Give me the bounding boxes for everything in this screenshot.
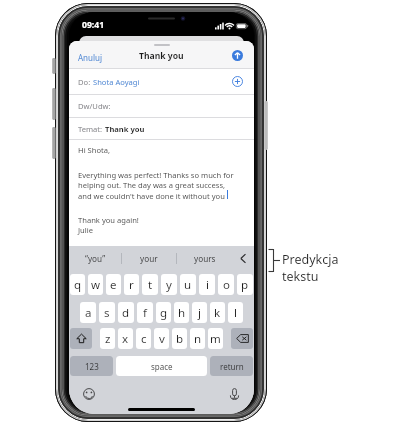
button[interactable]: Send	[232, 50, 243, 61]
staticText: “you”	[85, 253, 106, 264]
button[interactable]: yours	[177, 246, 233, 271]
staticText: Thank you again! Julie	[78, 215, 139, 236]
staticText: k	[214, 305, 221, 321]
staticText: z	[105, 331, 111, 347]
button[interactable]: Shift	[70, 328, 92, 349]
staticText: 123	[85, 361, 99, 372]
button[interactable]: c	[136, 328, 151, 349]
staticText: Dw/Udw:	[78, 101, 111, 111]
button[interactable]: j	[192, 302, 207, 323]
button[interactable]: g	[156, 302, 171, 323]
button[interactable]: Emoji keyboard	[83, 388, 95, 400]
staticText: return	[220, 361, 244, 372]
button[interactable]: Do:	[69, 69, 254, 94]
staticText: n	[194, 331, 202, 347]
button[interactable]: Dw/Udw:	[78, 101, 254, 111]
staticText: r	[129, 277, 134, 293]
button[interactable]: b	[172, 328, 187, 349]
staticText: m	[210, 331, 221, 347]
staticText: p	[241, 277, 249, 293]
button[interactable]: Dictation	[229, 388, 240, 399]
staticText: Thank you	[139, 50, 184, 62]
staticText: e	[110, 277, 117, 293]
staticText: s	[104, 305, 110, 321]
button[interactable]: t	[142, 274, 158, 295]
staticText: Hi Shota,	[78, 145, 111, 155]
button[interactable]: o	[218, 274, 234, 295]
button[interactable]: p	[237, 274, 253, 295]
staticText: Predykcja	[282, 251, 339, 268]
button[interactable]: Anuluj	[72, 50, 109, 65]
button[interactable]: 123	[70, 356, 113, 376]
button[interactable]: z	[100, 328, 115, 349]
staticText: tekstu	[282, 268, 319, 285]
button[interactable]: x	[118, 328, 133, 349]
button[interactable]: i	[199, 274, 215, 295]
staticText: i	[206, 277, 209, 293]
staticText: u	[184, 277, 192, 293]
staticText: Thank you	[105, 124, 145, 134]
staticText: w	[91, 277, 101, 293]
button[interactable]: return	[210, 356, 253, 376]
staticText: yours	[194, 253, 216, 264]
button[interactable]: Backspace	[231, 328, 253, 349]
staticText: Anuluj	[78, 52, 103, 63]
button[interactable]: v	[154, 328, 169, 349]
button[interactable]: q	[70, 274, 85, 295]
staticText: d	[122, 305, 130, 321]
staticText: y	[166, 277, 172, 293]
button[interactable]: u	[180, 274, 196, 295]
button[interactable]: w	[88, 274, 103, 295]
button[interactable]: y	[161, 274, 177, 295]
staticText: t	[148, 277, 153, 293]
staticText: your	[140, 253, 158, 264]
staticText: space	[151, 361, 173, 372]
staticText: b	[176, 331, 184, 347]
staticText: Everything was perfect! Thanks so much f…	[78, 170, 234, 202]
button[interactable]: Add recipient	[232, 76, 243, 87]
staticText: j	[198, 305, 201, 321]
staticText: 09:41	[82, 19, 105, 31]
button[interactable]: l	[228, 302, 243, 323]
button[interactable]: a	[80, 302, 96, 323]
staticText: q	[74, 277, 82, 293]
button[interactable]: k	[210, 302, 225, 323]
staticText: o	[223, 277, 230, 293]
button[interactable]: space	[116, 356, 207, 376]
staticText: Shota Aoyagi	[93, 77, 140, 87]
button[interactable]: d	[118, 302, 134, 323]
staticText: Do:	[78, 77, 93, 87]
button[interactable]: Temat:	[78, 124, 145, 134]
button[interactable]: m	[208, 328, 223, 349]
button[interactable]: f	[137, 302, 153, 323]
staticText: f	[143, 305, 147, 321]
button[interactable]: n	[190, 328, 205, 349]
staticText: l	[234, 305, 237, 321]
button[interactable]: h	[174, 302, 189, 323]
staticText: v	[159, 331, 165, 347]
button[interactable]: e	[106, 274, 121, 295]
button[interactable]: “you”	[69, 246, 121, 271]
button[interactable]: r	[124, 274, 139, 295]
staticText: x	[122, 331, 129, 347]
staticText: g	[160, 305, 168, 321]
staticText: h	[178, 305, 186, 321]
button[interactable]: your	[122, 246, 176, 271]
staticText: Temat:	[78, 124, 105, 134]
staticText: c	[141, 331, 147, 347]
button[interactable]: Expand predictions	[233, 246, 254, 271]
staticText: a	[85, 305, 92, 321]
button[interactable]: s	[99, 302, 115, 323]
